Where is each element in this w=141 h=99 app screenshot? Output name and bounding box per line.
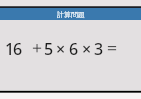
staticText: ×: [82, 38, 92, 60]
button[interactable]: 計算問題: [0, 8, 141, 20]
staticText: 5: [44, 38, 54, 60]
staticText: ×: [56, 38, 66, 60]
staticText: 6: [13, 38, 23, 60]
staticText: 計算問題: [57, 10, 85, 19]
staticText: ＋: [29, 38, 45, 58]
staticText: 1: [5, 38, 15, 60]
staticText: 6: [69, 38, 79, 60]
staticText: 3: [94, 38, 104, 60]
staticText: ＝: [104, 38, 120, 58]
